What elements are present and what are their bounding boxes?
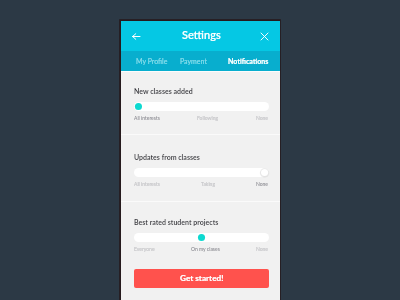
staticText: None — [256, 115, 269, 121]
button[interactable]: Get started! — [134, 269, 269, 288]
staticText: All interests — [134, 115, 160, 121]
button[interactable]: Payment — [173, 51, 214, 71]
staticText: My Profile — [136, 57, 168, 65]
staticText: New classes added — [134, 87, 193, 95]
staticText: Taking — [201, 181, 215, 187]
staticText: Notifications — [228, 57, 269, 65]
staticText: Payment — [180, 57, 207, 65]
button[interactable]: My Profile — [129, 51, 174, 71]
staticText: All interests — [134, 181, 160, 187]
button[interactable]: Close — [257, 29, 271, 43]
staticText: Get started! — [180, 273, 224, 283]
button[interactable]: Back — [128, 29, 143, 44]
staticText: None — [256, 181, 269, 187]
staticText: Updates from classes — [134, 153, 200, 161]
staticText: On my clases — [191, 246, 220, 252]
button[interactable]: Notifications — [219, 51, 277, 71]
staticText: None — [256, 246, 269, 252]
staticText: Everyone — [134, 246, 155, 252]
staticText: Best rated student projects — [134, 218, 219, 226]
staticText: Following — [197, 115, 219, 121]
staticText: Settings — [182, 28, 221, 41]
